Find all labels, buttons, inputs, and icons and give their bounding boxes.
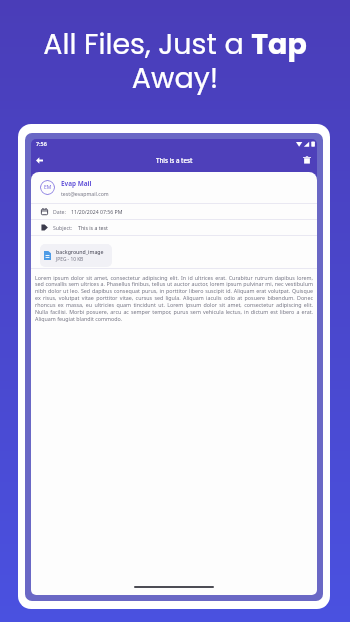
staticText: All Files, Just a Tap Away! <box>43 24 307 98</box>
button[interactable]: Delete <box>301 154 313 166</box>
staticText: Lorem ipsum dolor sit amet, consectetur … <box>35 274 313 323</box>
button[interactable]: Back <box>36 157 43 164</box>
staticText: test@evapmail.com <box>61 190 109 197</box>
staticText: This is a test <box>156 156 193 164</box>
staticText: EM <box>44 184 52 191</box>
staticText: Subject: <box>53 224 73 231</box>
staticText: 7:56 <box>36 140 47 147</box>
staticText: Date: <box>53 208 66 215</box>
staticText: 11/20/2024 07:56 PM <box>71 208 123 215</box>
staticText: background_image <box>56 248 104 255</box>
button[interactable]: background_image <box>40 244 112 267</box>
staticText: JPEG - 10 KB <box>56 256 84 263</box>
staticText: This is a test <box>78 224 108 231</box>
staticText: Evap Mail <box>61 179 92 188</box>
